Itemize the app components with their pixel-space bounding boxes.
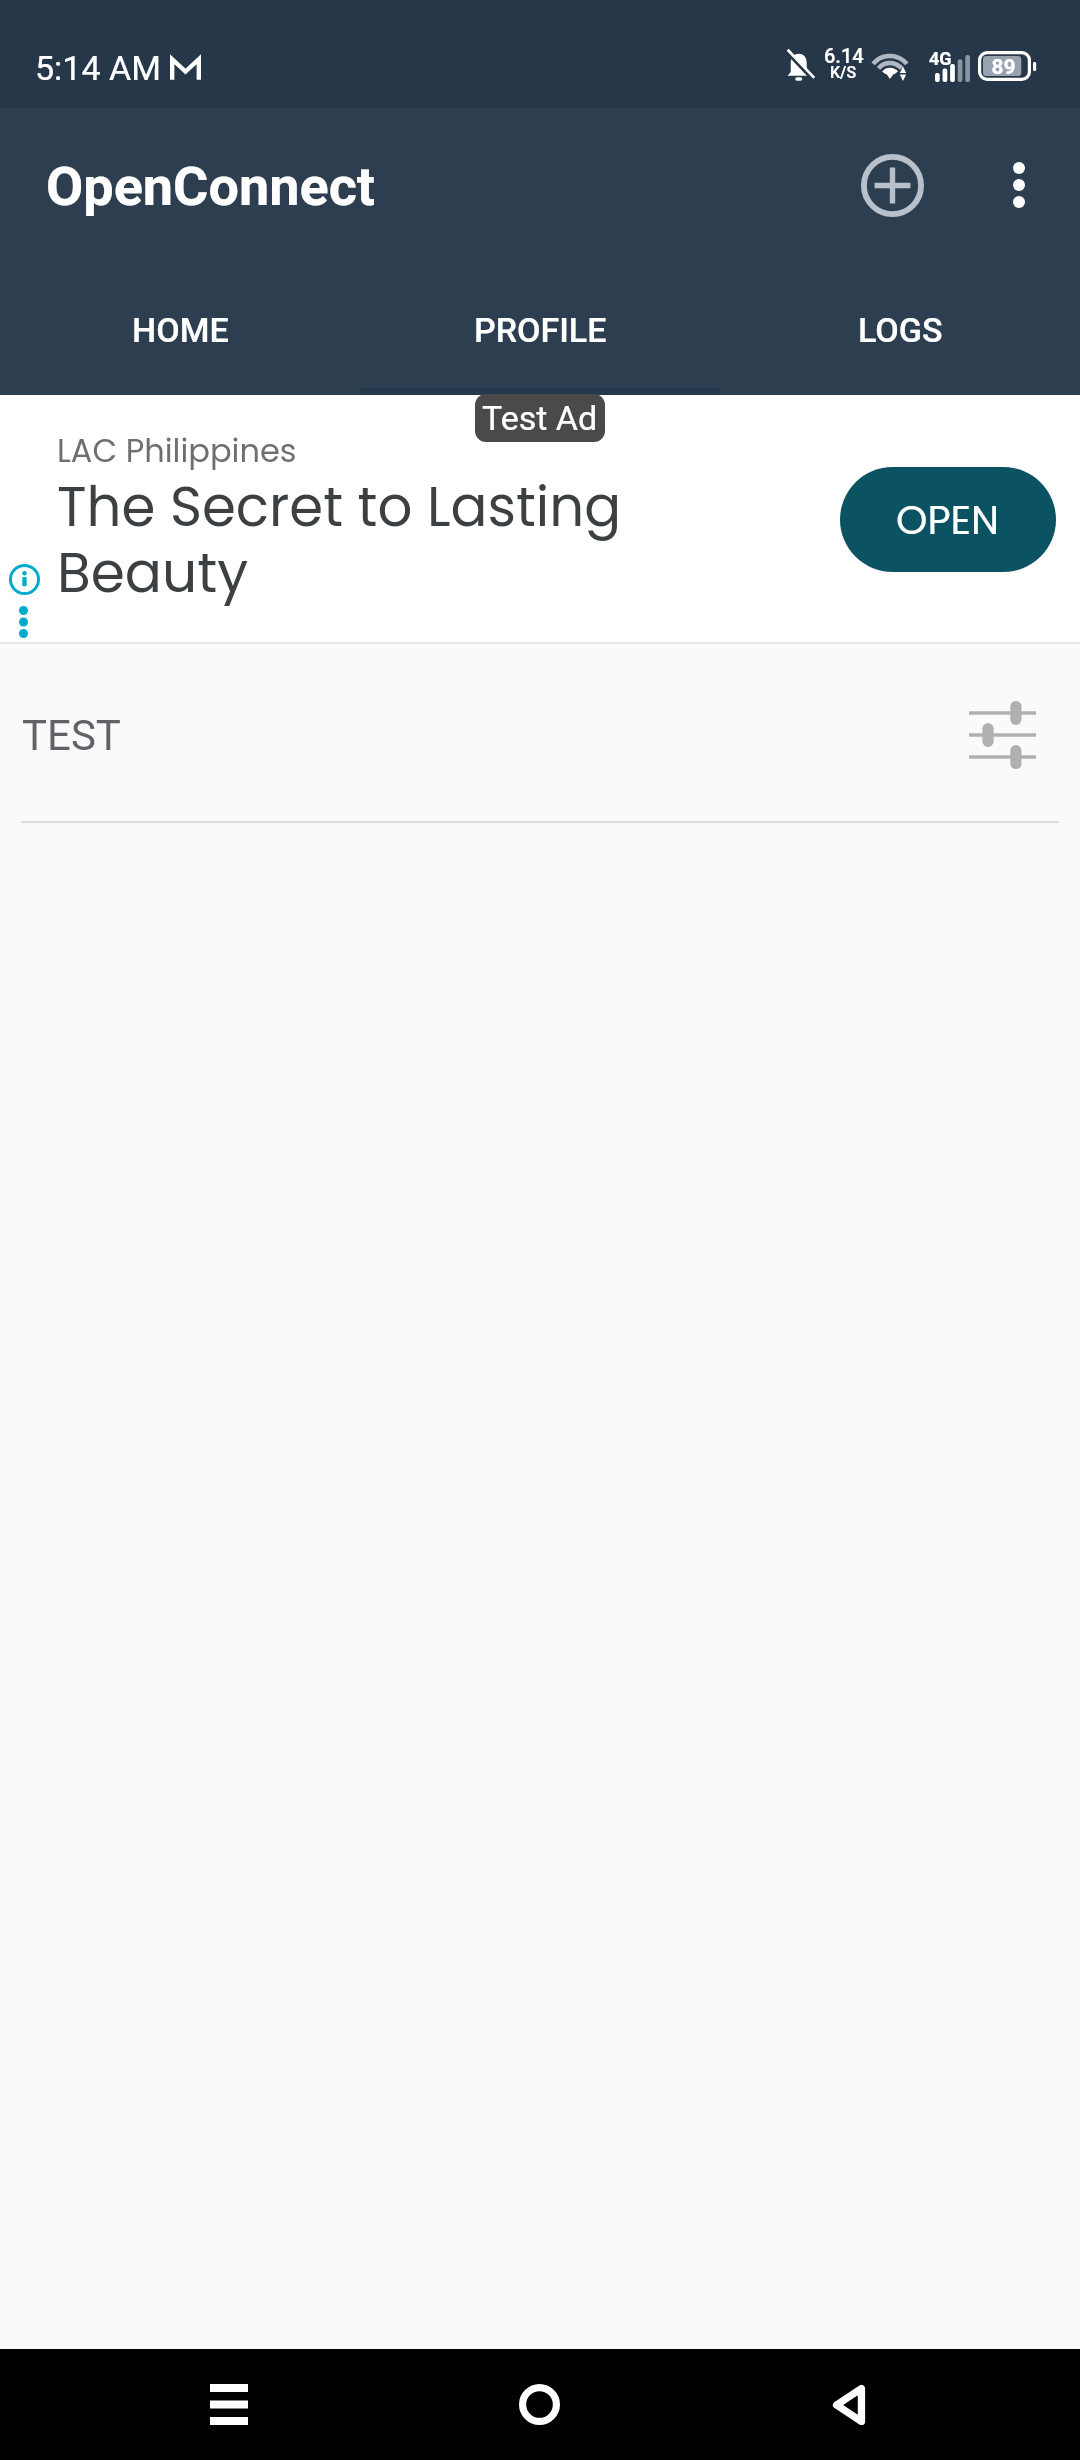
staticText: OPEN [896,492,1000,548]
staticText: 89 [984,55,1023,80]
staticText: 6.14 [824,44,864,67]
button[interactable]: Filter settings [955,687,1050,782]
staticText: LOGS [858,310,943,350]
staticText: 4G [929,48,952,69]
staticText: Beauty [57,534,249,611]
button[interactable]: Back [800,2356,897,2453]
button[interactable]: LOGS [720,290,1080,395]
staticText: HOME [132,310,229,350]
staticText: The Secret to Lasting [57,469,622,545]
staticText: TEST [22,711,121,760]
button[interactable]: HOME [0,290,360,395]
staticText: OpenConnect [46,155,376,218]
staticText: 5:14 AM [35,48,161,88]
button[interactable]: PROFILE [360,290,720,395]
staticText: PROFILE [474,310,607,350]
button[interactable]: Add profile [838,131,946,239]
button[interactable]: Recent apps [180,2356,277,2453]
button[interactable]: Home [491,2356,588,2453]
staticText: LAC Philippines [57,428,297,473]
staticText: K/S [830,63,857,82]
button[interactable]: More options [965,131,1073,239]
staticText: Test Ad [482,398,598,438]
button[interactable]: OPEN [840,467,1056,572]
